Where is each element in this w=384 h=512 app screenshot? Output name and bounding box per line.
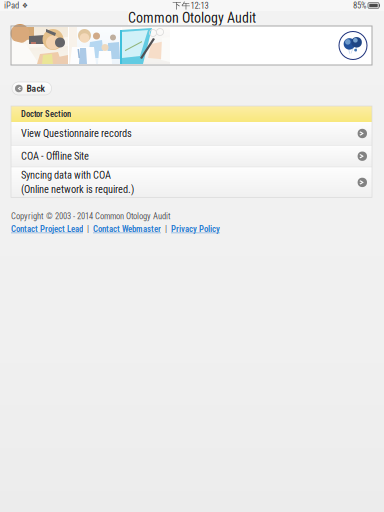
- staticText: Doctor Section: [21, 109, 71, 119]
- button[interactable]: Syncing data with COA: [11, 167, 372, 197]
- staticText: Common Otology Audit: [128, 10, 256, 26]
- staticText: 85%: [353, 0, 366, 11]
- staticText: iPad: [4, 0, 19, 11]
- button[interactable]: Back: [12, 82, 52, 95]
- staticText: Contact Project Lead: [11, 224, 83, 234]
- button[interactable]: COA - Offline Site: [11, 146, 372, 167]
- staticText: 下午12:13: [172, 0, 208, 11]
- staticText: ❖: [22, 1, 28, 10]
- button[interactable]: Contact Webmaster: [93, 224, 161, 234]
- staticText: Contact Webmaster: [93, 224, 161, 234]
- staticText: COA - Offline Site: [21, 150, 89, 162]
- staticText: (Online network is required.): [21, 183, 134, 196]
- staticText: View Questionnaire records: [21, 127, 132, 140]
- staticText: Back: [27, 83, 46, 94]
- button[interactable]: View Questionnaire records: [11, 122, 372, 145]
- staticText: |: [161, 224, 171, 234]
- staticText: Privacy Policy: [171, 224, 220, 234]
- staticText: |: [83, 224, 93, 234]
- button[interactable]: Contact Project Lead: [11, 224, 83, 234]
- staticText: Copyright © 2003 - 2014 Common Otology A…: [11, 211, 171, 221]
- button[interactable]: Privacy Policy: [171, 224, 220, 234]
- staticText: Syncing data with COA: [21, 169, 111, 181]
